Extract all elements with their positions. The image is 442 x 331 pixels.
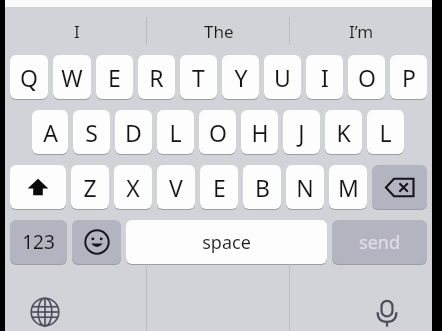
- button[interactable]: U: [264, 55, 301, 99]
- staticText: J: [298, 117, 305, 148]
- button[interactable]: T: [180, 55, 217, 99]
- staticText: S: [85, 117, 98, 148]
- button[interactable]: Voice input: [290, 264, 432, 331]
- button[interactable]: O: [199, 110, 236, 154]
- button[interactable]: space: [126, 220, 327, 264]
- staticText: V: [169, 172, 183, 203]
- staticText: I: [74, 20, 80, 43]
- button[interactable]: Emoji: [72, 220, 121, 264]
- staticText: I: [321, 62, 329, 93]
- button[interactable]: O: [348, 55, 385, 99]
- staticText: H: [251, 117, 269, 148]
- staticText: A: [43, 117, 58, 148]
- staticText: B: [255, 172, 270, 203]
- button[interactable]: W: [53, 55, 91, 99]
- button[interactable]: S: [73, 110, 110, 154]
- button[interactable]: send: [332, 220, 427, 264]
- staticText: send: [359, 230, 400, 255]
- button[interactable]: Q: [10, 55, 48, 99]
- staticText: Q: [20, 62, 38, 93]
- staticText: L: [169, 117, 182, 148]
- button[interactable]: P: [390, 55, 427, 99]
- button[interactable]: 123: [10, 220, 67, 264]
- button[interactable]: A: [32, 110, 68, 154]
- staticText: D: [125, 117, 142, 148]
- staticText: 123: [22, 229, 55, 255]
- button[interactable]: X: [114, 165, 152, 209]
- staticText: N: [296, 172, 314, 203]
- button[interactable]: The: [148, 7, 290, 55]
- button[interactable]: R: [138, 55, 175, 99]
- staticText: W: [61, 62, 83, 93]
- staticText: U: [274, 62, 291, 93]
- button[interactable]: I: [5, 7, 148, 55]
- staticText: The: [204, 20, 234, 43]
- staticText: O: [358, 62, 376, 93]
- staticText: L: [379, 117, 392, 148]
- button[interactable]: J: [283, 110, 320, 154]
- staticText: P: [402, 62, 416, 93]
- button[interactable]: E: [200, 165, 238, 209]
- staticText: K: [336, 117, 351, 148]
- staticText: space: [202, 230, 251, 255]
- staticText: Y: [234, 62, 248, 93]
- button[interactable]: E: [96, 55, 133, 99]
- button[interactable]: Backspace: [372, 165, 427, 209]
- staticText: E: [108, 62, 121, 93]
- button[interactable]: I’m: [290, 7, 432, 55]
- button[interactable]: N: [286, 165, 324, 209]
- staticText: O: [209, 117, 227, 148]
- button[interactable]: L: [157, 110, 194, 154]
- staticText: I’m: [349, 20, 374, 43]
- staticText: T: [192, 62, 205, 93]
- button[interactable]: K: [325, 110, 362, 154]
- button[interactable]: M: [329, 165, 367, 209]
- button[interactable]: V: [157, 165, 195, 209]
- button[interactable]: Shift: [10, 165, 66, 209]
- staticText: M: [338, 172, 359, 203]
- button[interactable]: L: [367, 110, 404, 154]
- staticText: Z: [83, 172, 97, 203]
- button[interactable]: Y: [222, 55, 259, 99]
- button[interactable]: I: [306, 55, 343, 99]
- staticText: E: [213, 172, 226, 203]
- staticText: X: [126, 172, 140, 203]
- button[interactable]: Change keyboard language: [5, 264, 148, 331]
- button[interactable]: B: [243, 165, 281, 209]
- button[interactable]: Z: [71, 165, 109, 209]
- button[interactable]: D: [115, 110, 152, 154]
- button[interactable]: H: [241, 110, 278, 154]
- staticText: R: [149, 62, 164, 93]
